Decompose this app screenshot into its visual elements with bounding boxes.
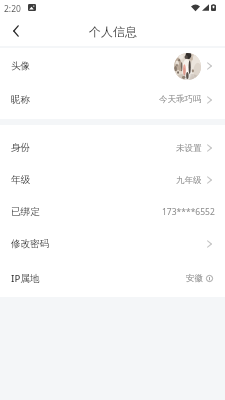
staticText: 年级 [11,174,31,186]
button[interactable]: 头像 [0,48,225,84]
staticText: 个人信息 [89,24,137,39]
button[interactable]: 身份 [0,132,225,164]
button[interactable]: 昵称 [0,84,225,115]
staticText: 今天乖巧吗 [159,94,202,105]
staticText: IP属地 [11,272,40,285]
staticText: 身份 [11,142,31,154]
button[interactable]: 年级 [0,164,225,196]
staticText: 173****6552 [162,206,215,218]
button[interactable]: IP属地 [0,260,225,297]
button[interactable]: 修改密码 [0,228,225,260]
button[interactable]: 已绑定 [0,196,225,228]
staticText: 未设置 [176,143,202,154]
staticText: 2:20 [4,3,21,15]
staticText: 安徽 [186,273,203,284]
staticText: 九年级 [176,175,202,186]
button[interactable]: Back [0,19,31,46]
staticText: 昵称 [11,94,31,106]
staticText: 已绑定 [11,206,40,218]
staticText: 头像 [11,60,31,72]
staticText: 修改密码 [11,238,50,250]
